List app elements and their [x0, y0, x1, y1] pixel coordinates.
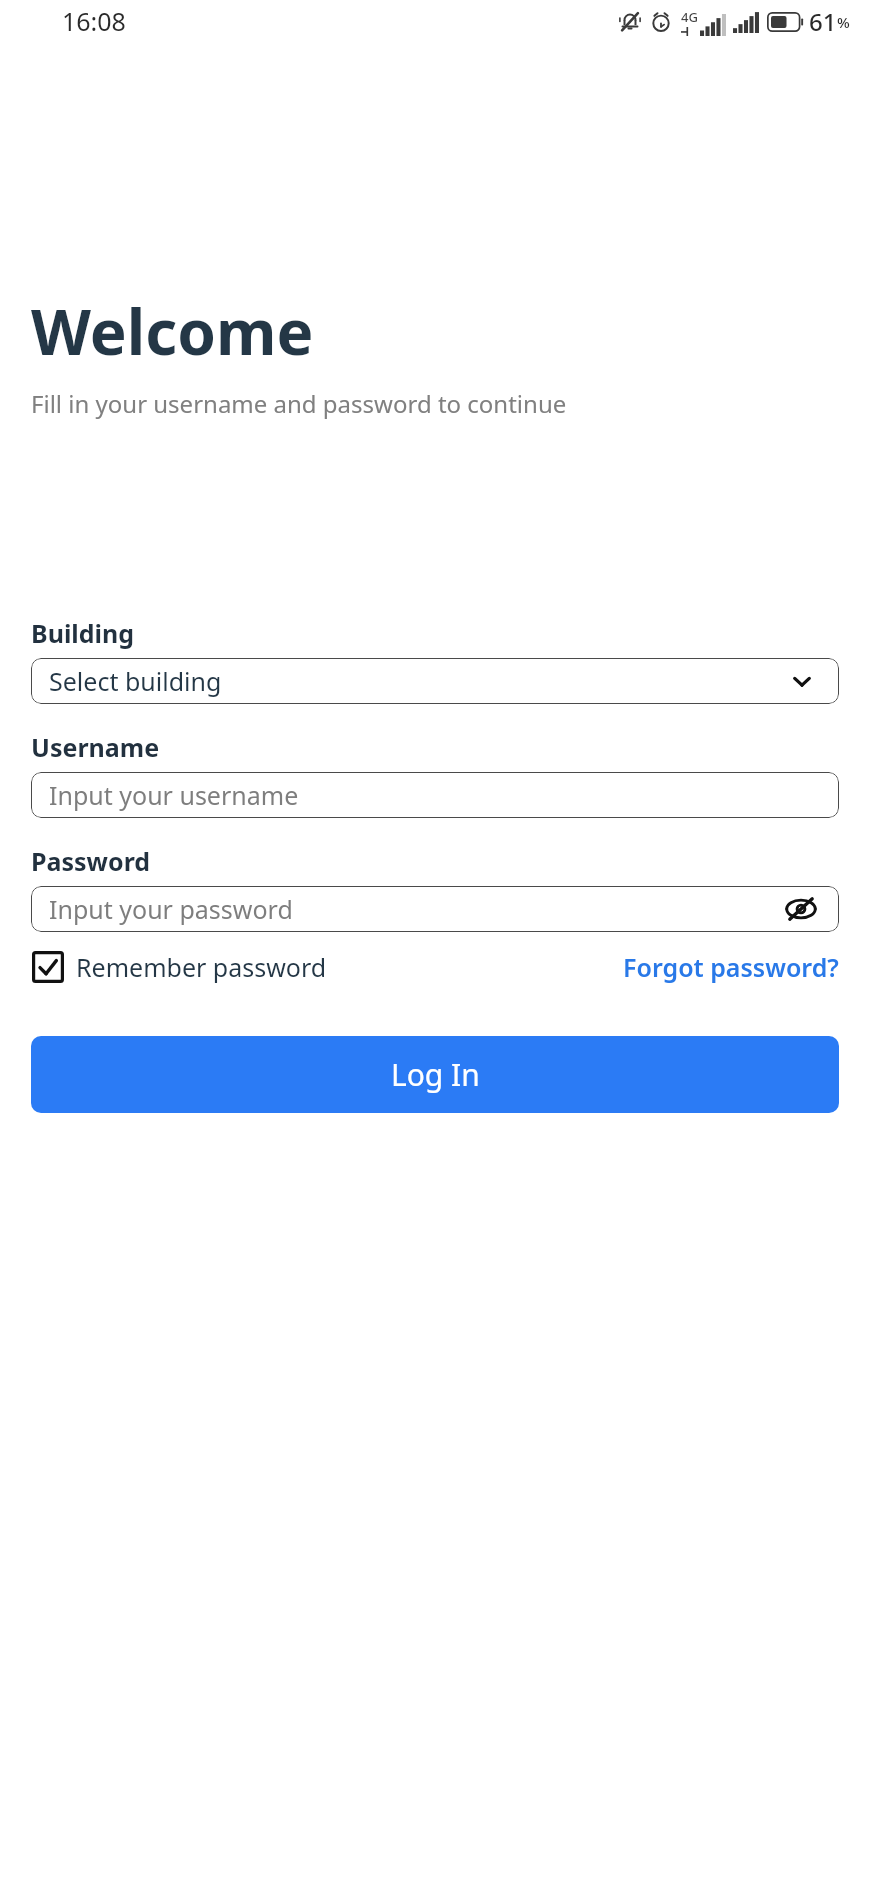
button[interactable]: Forgot password?	[623, 950, 839, 984]
staticText: Building	[31, 616, 135, 650]
button[interactable]: Remember password	[31, 950, 327, 984]
staticText: Input your password	[49, 892, 781, 926]
staticText: Log In	[391, 1054, 480, 1095]
staticText: Welcome	[31, 289, 314, 373]
staticText: %	[837, 12, 850, 32]
staticText: Forgot password?	[623, 950, 839, 984]
staticText: 4G	[681, 8, 698, 26]
button[interactable]: Input your password	[31, 886, 839, 932]
staticText: Select building	[49, 664, 787, 698]
staticText: 61	[809, 5, 837, 38]
staticText: Input your username	[49, 778, 299, 812]
button[interactable]: Input your username	[31, 772, 839, 818]
staticText: Username	[31, 730, 160, 764]
button[interactable]: Show password	[781, 889, 821, 929]
staticText: 16:08	[62, 4, 126, 38]
button[interactable]: Log In	[31, 1036, 839, 1113]
staticText: Fill in your username and password to co…	[31, 387, 567, 420]
button[interactable]: Select building	[31, 658, 839, 704]
staticText: Remember password	[76, 950, 327, 984]
staticText: Password	[31, 844, 151, 878]
